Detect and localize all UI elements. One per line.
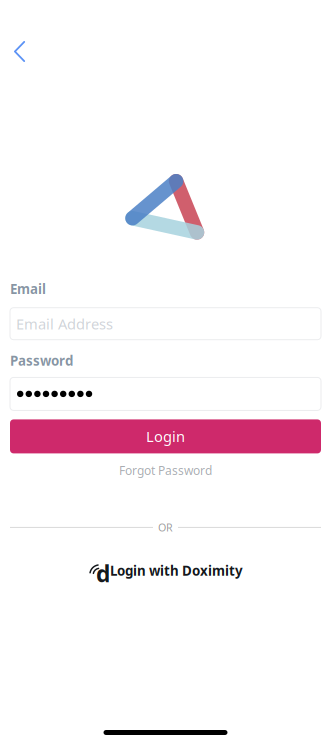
staticText: Login [146, 427, 185, 446]
staticText: d [96, 558, 110, 589]
button[interactable]: Back [0, 31, 42, 72]
button[interactable]: Forgot Password [10, 462, 321, 478]
staticText: Forgot Password [119, 462, 212, 478]
staticText: Password [10, 352, 73, 369]
staticText: Login with Doximity [110, 562, 243, 579]
staticText: OR [158, 520, 173, 534]
button[interactable]: Login [10, 419, 321, 453]
staticText: Email Address [16, 314, 113, 333]
button[interactable]: d [10, 559, 321, 581]
staticText: Email [10, 280, 46, 298]
